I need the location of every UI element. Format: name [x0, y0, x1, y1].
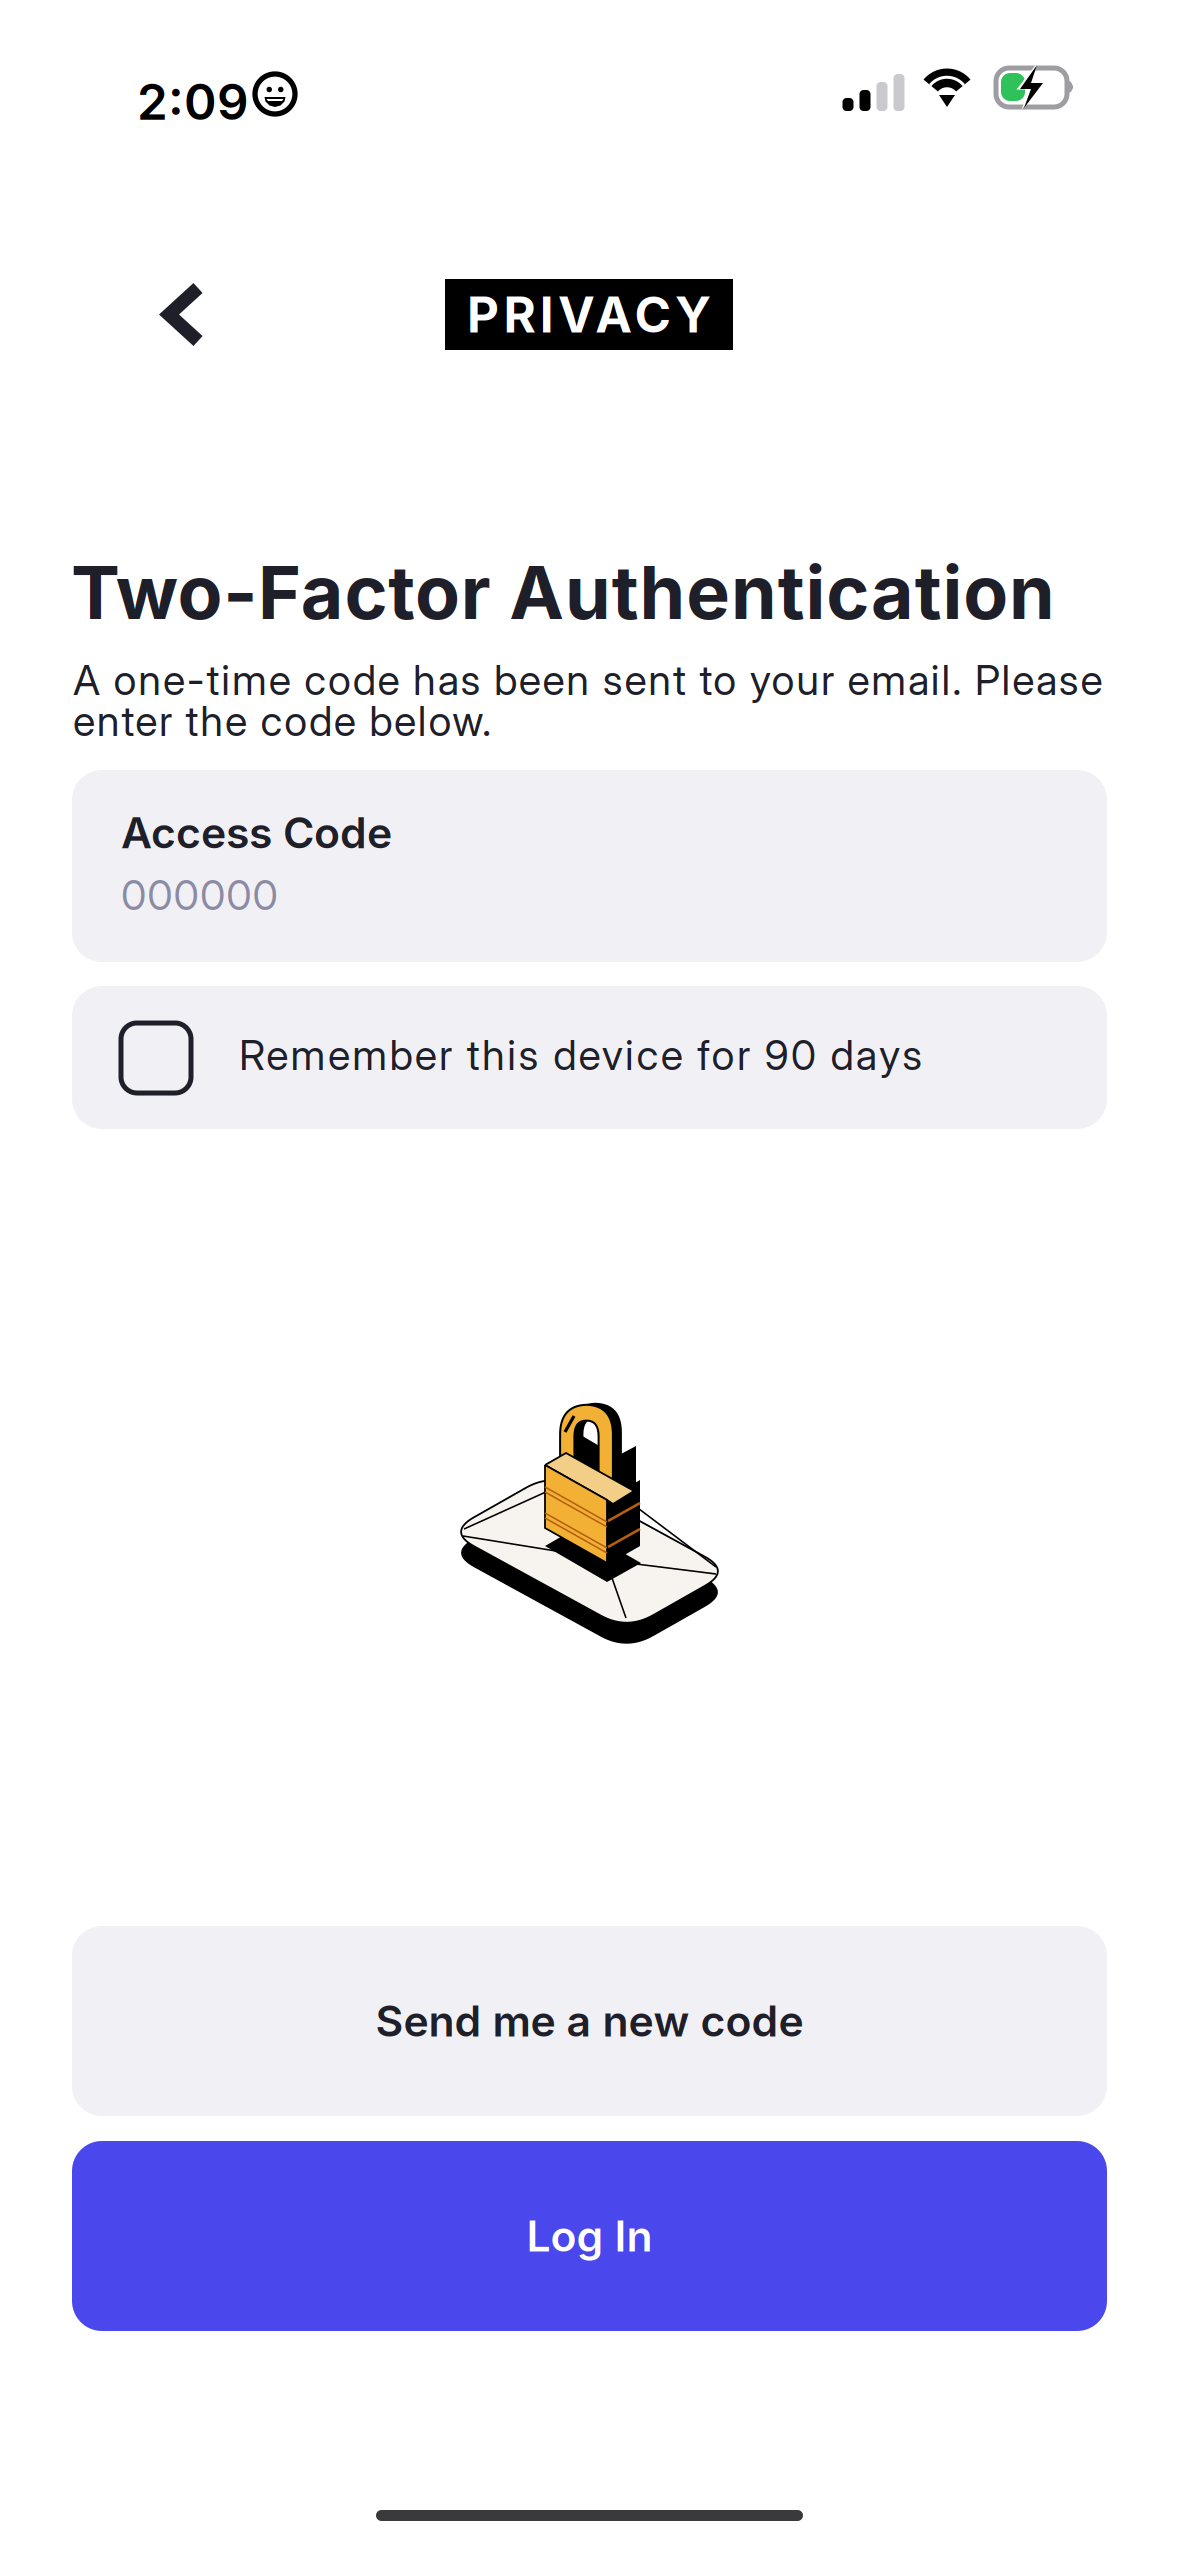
staticText: 2:09 — [137, 72, 249, 132]
staticText: A one-time code has been sent to your em… — [73, 655, 1102, 705]
staticText: Two-Factor Authentication — [71, 548, 1055, 637]
staticText: Log In — [526, 2210, 652, 2262]
staticText: Send me a new code — [375, 1995, 803, 2047]
button[interactable]: Back — [128, 259, 228, 369]
staticText: Access Code — [121, 807, 392, 859]
staticText: Remember this device for 90 days — [239, 1030, 922, 1080]
staticText: 000000 — [121, 870, 277, 920]
staticText: PRIVACY — [467, 285, 711, 344]
button[interactable]: Send me a new code — [72, 1926, 1107, 2116]
button[interactable]: Log In — [72, 2141, 1107, 2331]
button[interactable]: Remember this device for 90 days — [72, 986, 1107, 1129]
staticText: enter the code below. — [73, 696, 491, 746]
